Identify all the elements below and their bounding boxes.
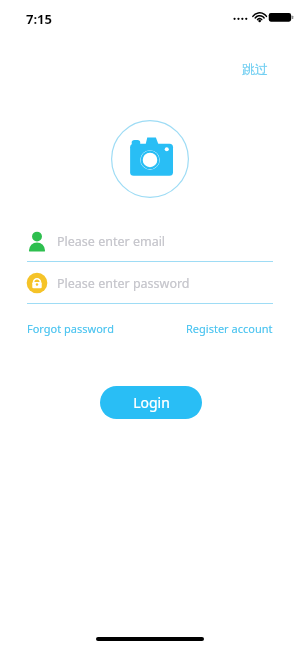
staticText: 7:15: [26, 10, 52, 28]
button[interactable]: 跳过: [236, 58, 274, 80]
staticText: 跳过: [242, 61, 268, 77]
other: App logo: [111, 120, 189, 198]
staticText: Please enter password: [57, 275, 190, 292]
button[interactable]: Please enter password: [0, 270, 300, 304]
button[interactable]: Login: [100, 386, 202, 419]
staticText: Forgot password: [27, 321, 114, 336]
staticText: Please enter email: [57, 233, 166, 250]
button[interactable]: Forgot password: [26, 318, 115, 339]
staticText: Register account: [186, 321, 273, 336]
button[interactable]: Register account: [185, 318, 274, 339]
staticText: Login: [133, 393, 170, 412]
button[interactable]: Please enter email: [0, 228, 300, 262]
